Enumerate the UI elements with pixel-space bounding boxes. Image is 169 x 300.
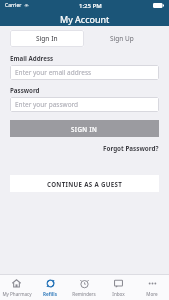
button[interactable]: CONTINUE AS A GUEST xyxy=(10,175,159,192)
staticText: Forgot Password? xyxy=(103,144,159,153)
button[interactable]: Enter your email address xyxy=(10,65,159,80)
staticText: My Pharmacy xyxy=(2,291,32,297)
staticText: Password xyxy=(10,86,40,94)
staticText: My Account xyxy=(60,13,110,25)
staticText: 1:25 PM xyxy=(79,2,102,10)
staticText: Sign Up xyxy=(110,34,134,43)
staticText: CONTINUE AS A GUEST xyxy=(47,180,123,188)
button[interactable]: SIGN IN xyxy=(10,120,159,137)
button[interactable]: Refills xyxy=(33,275,67,300)
staticText: More xyxy=(146,291,158,297)
button[interactable]: Inbox xyxy=(101,275,135,300)
staticText: Inbox xyxy=(112,291,125,297)
staticText: Reminders xyxy=(72,291,96,297)
button[interactable]: Reminders xyxy=(67,275,101,300)
button[interactable]: My Pharmacy xyxy=(0,275,33,300)
button[interactable]: Enter your password xyxy=(10,97,159,112)
staticText: Refills xyxy=(43,291,57,297)
button[interactable]: More xyxy=(135,275,169,300)
staticText: Enter your password xyxy=(15,100,79,109)
staticText: Email Address xyxy=(10,54,54,62)
button[interactable]: Sign Up xyxy=(84,30,159,47)
button[interactable]: Forgot Password? xyxy=(103,144,159,153)
button[interactable]: Sign In xyxy=(10,30,84,47)
staticText: SIGN IN xyxy=(71,125,98,133)
staticText: Sign In xyxy=(36,34,58,43)
staticText: Carrier xyxy=(5,2,22,9)
staticText: Enter your email address xyxy=(15,68,92,77)
